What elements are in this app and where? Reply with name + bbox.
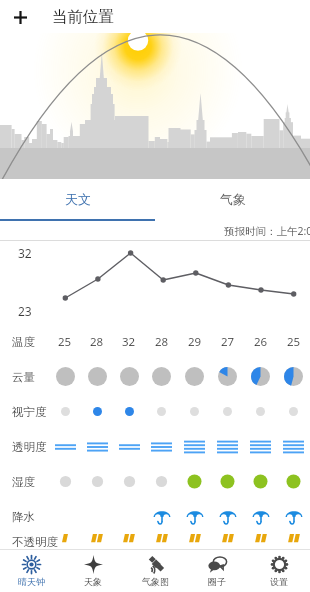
staticText: 27 — [221, 334, 235, 350]
staticText: 晴天钟 — [18, 576, 45, 587]
staticText: 云量 — [12, 370, 35, 384]
staticText: 湿度 — [12, 475, 35, 489]
staticText: 视宁度 — [12, 405, 47, 419]
staticText: 气象图 — [142, 576, 169, 587]
staticText: 预报时间：上午2:00 — [224, 224, 310, 238]
staticText: 25 — [287, 334, 301, 350]
staticText: 32 — [18, 245, 32, 261]
staticText: 气象 — [220, 191, 246, 207]
button[interactable]: 圈子 — [186, 550, 248, 592]
staticText: 圈子 — [208, 576, 226, 587]
staticText: 28 — [155, 334, 169, 350]
staticText: 32 — [122, 334, 136, 350]
button[interactable]: 天象 — [62, 550, 124, 592]
button[interactable]: Add location — [6, 3, 34, 31]
staticText: 不透明度 — [12, 535, 58, 549]
staticText: 26 — [254, 334, 268, 350]
staticText: 28 — [90, 334, 104, 350]
staticText: 当前位置 — [52, 7, 114, 27]
button[interactable]: 晴天钟 — [0, 550, 62, 592]
staticText: 29 — [188, 334, 202, 350]
staticText: 25 — [58, 334, 72, 350]
button[interactable]: 天文 — [0, 179, 155, 219]
button[interactable]: 气象图 — [124, 550, 186, 592]
staticText: 23 — [18, 303, 32, 319]
staticText: 降水 — [12, 510, 35, 524]
button[interactable]: 设置 — [248, 550, 310, 592]
staticText: 天象 — [84, 576, 102, 587]
button[interactable]: 气象 — [155, 179, 310, 219]
staticText: 设置 — [270, 576, 288, 587]
staticText: 温度 — [12, 335, 35, 349]
staticText: 透明度 — [12, 440, 47, 454]
staticText: 天文 — [65, 191, 91, 207]
